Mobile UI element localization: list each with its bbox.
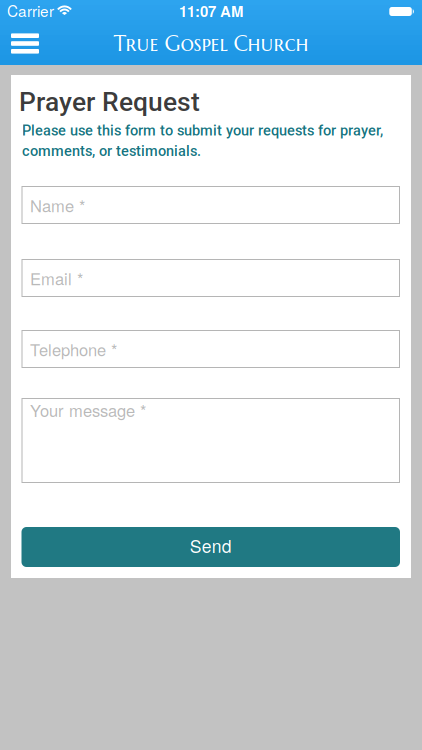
staticText: Prayer Request	[19, 86, 200, 117]
staticText: Your message *	[30, 398, 146, 422]
button[interactable]: Email *	[21, 259, 400, 297]
staticText: Carrier	[7, 0, 54, 21]
staticText: Send	[190, 533, 232, 558]
button[interactable]: Send	[21, 527, 400, 567]
button[interactable]: Your message *	[21, 398, 400, 483]
staticText: Please use this form to submit your requ…	[22, 122, 383, 160]
staticText: Telephone *	[30, 337, 117, 361]
staticText: True Gospel Church	[113, 30, 308, 57]
button[interactable]: Telephone *	[21, 330, 400, 368]
staticText: 11:07 AM	[179, 0, 243, 22]
button[interactable]: Name *	[21, 186, 400, 224]
button[interactable]: Menu	[0, 28, 39, 61]
staticText: Email *	[30, 266, 83, 290]
staticText: Name *	[30, 193, 85, 217]
